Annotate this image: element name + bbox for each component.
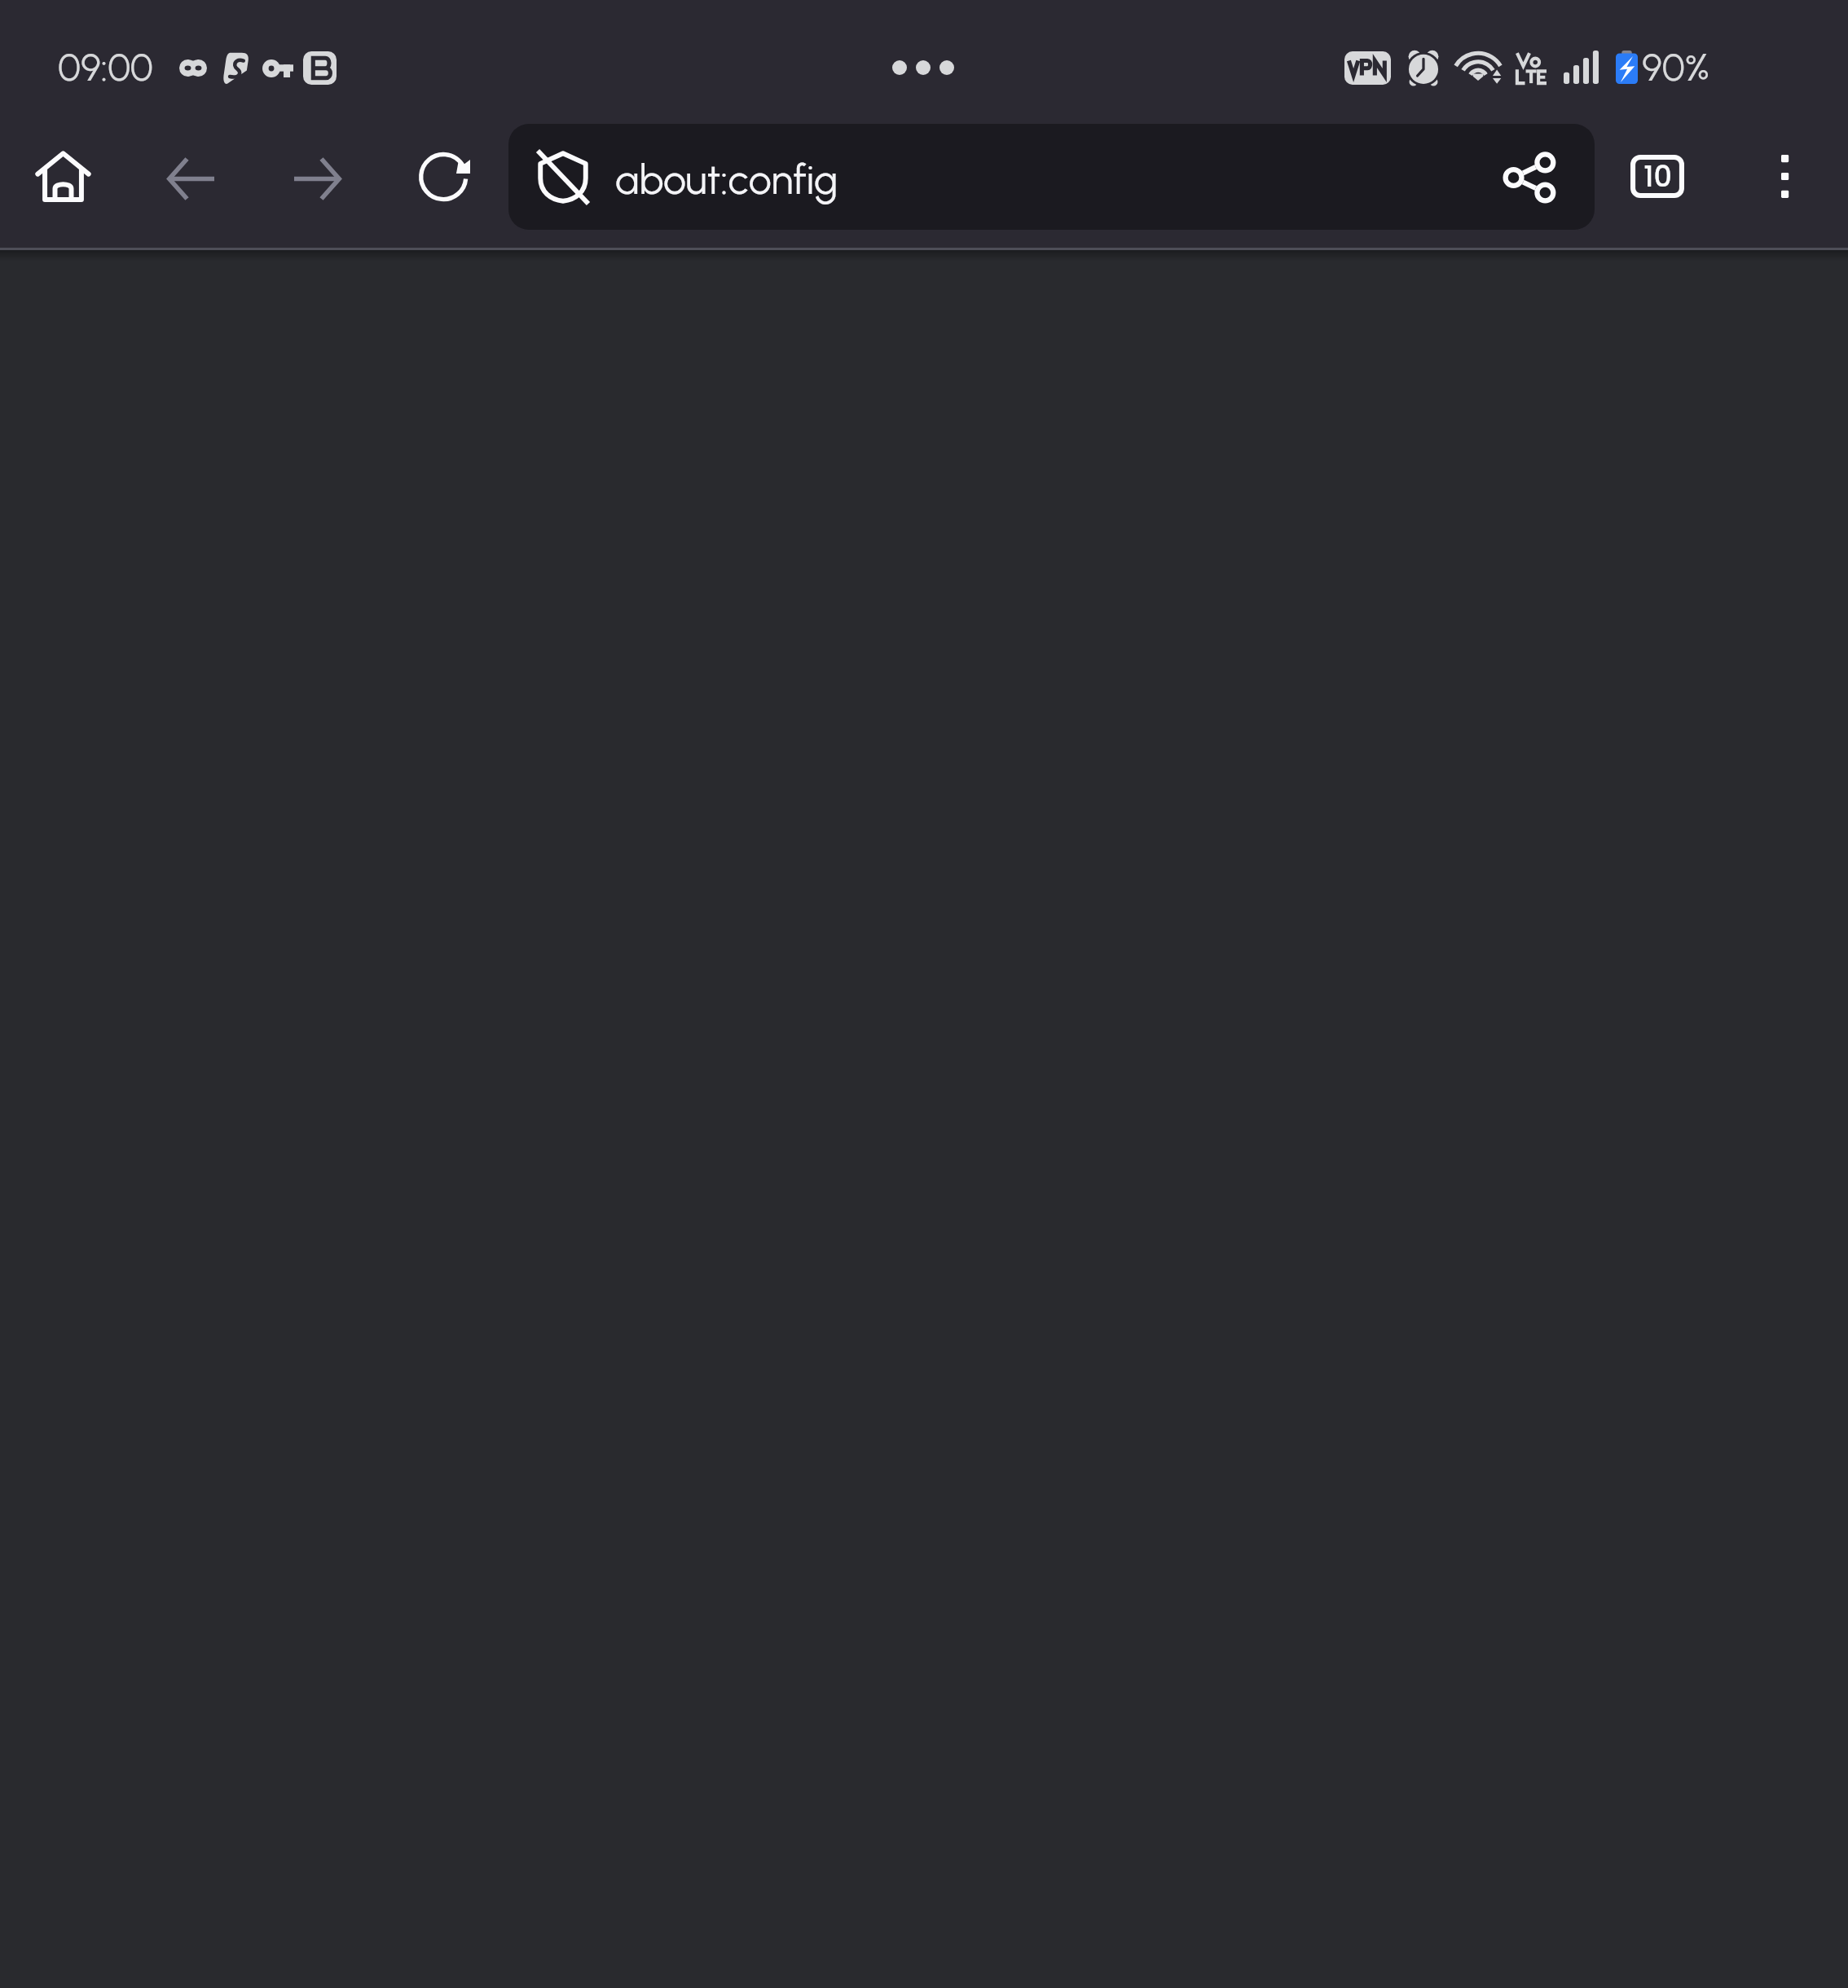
button[interactable]: Share [1477, 124, 1583, 230]
staticText: 10 [1643, 156, 1672, 196]
button[interactable]: Tabs [1621, 140, 1693, 212]
staticText: 90% [1642, 44, 1709, 90]
button[interactable]: Home [27, 140, 99, 212]
staticText: 09:00 [58, 44, 153, 90]
button[interactable]: about:config [508, 124, 1595, 230]
button[interactable]: Back [155, 143, 227, 214]
staticText: about:config [615, 155, 1477, 204]
button[interactable]: Reload [406, 140, 477, 212]
button[interactable]: More options [1749, 140, 1821, 212]
button[interactable]: Forward [282, 143, 354, 214]
